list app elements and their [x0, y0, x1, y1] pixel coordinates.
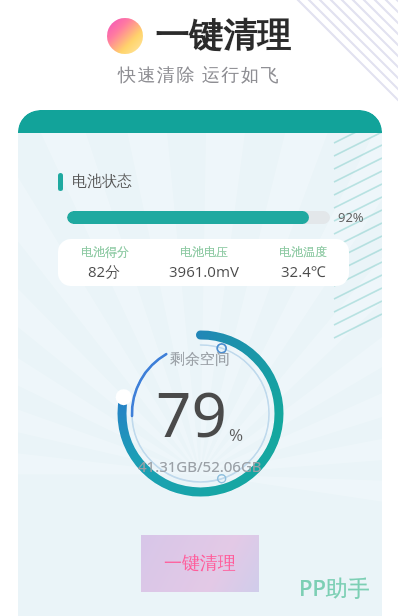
staticText: 剩余空间 — [170, 350, 230, 369]
staticText: PP助手 — [299, 572, 370, 602]
staticText: 电池电压 — [180, 244, 228, 259]
staticText: 电池得分 — [81, 244, 129, 259]
staticText: 79 — [156, 371, 227, 455]
staticText: 电池状态 — [72, 172, 132, 191]
staticText: 快速清除 运行如飞 — [0, 62, 398, 87]
button[interactable]: 电池电压 — [151, 244, 257, 281]
staticText: % — [229, 423, 244, 446]
staticText: 一键清理 — [164, 552, 236, 575]
staticText: 3961.0mV — [169, 261, 239, 281]
staticText: 32.4℃ — [281, 261, 326, 281]
button[interactable]: 一键清理 — [141, 535, 259, 592]
button[interactable]: 电池温度 — [257, 244, 349, 281]
staticText: 电池温度 — [279, 244, 327, 259]
staticText: 92% — [338, 208, 364, 226]
staticText: 一键清理 — [155, 14, 291, 57]
staticText: 82分 — [88, 261, 121, 281]
staticText: 41.31GB/52.06GB — [138, 456, 262, 476]
button[interactable]: 电池得分 — [58, 244, 151, 281]
